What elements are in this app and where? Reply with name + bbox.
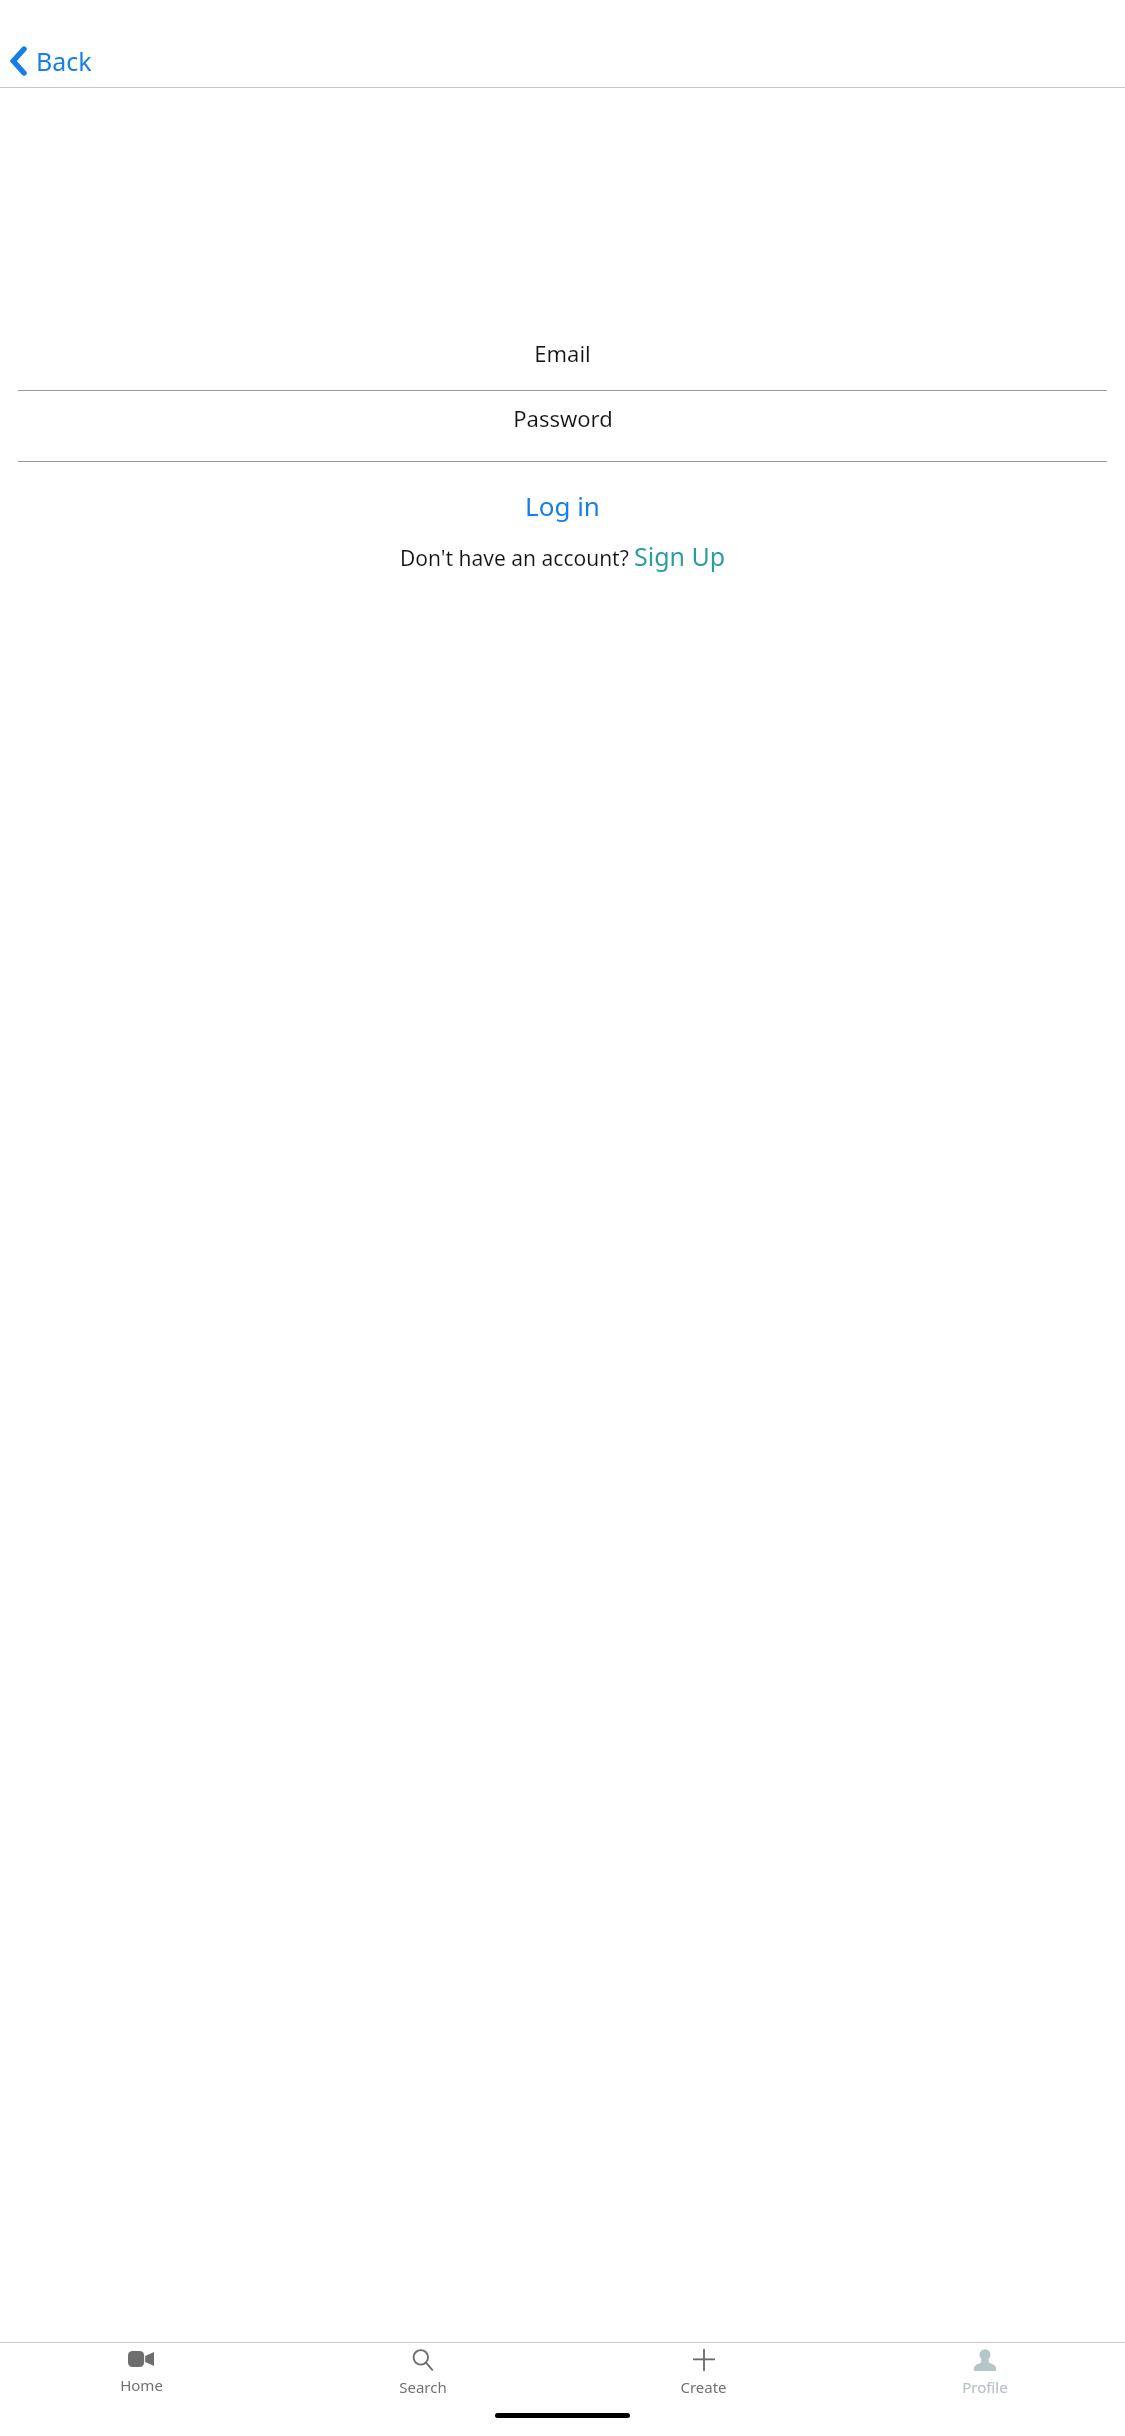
button[interactable]: Sign Up [634, 539, 726, 573]
staticText: Password [513, 403, 613, 433]
staticText: Email [534, 338, 591, 368]
staticText: Sign Up [634, 539, 726, 573]
staticText: Home [120, 2375, 163, 2395]
staticText: Profile [962, 2377, 1008, 2397]
staticText: Don't have an account? [400, 544, 629, 573]
other: Profile [973, 2349, 997, 2371]
button[interactable]: Log in [511, 484, 614, 527]
button[interactable]: Home [0, 2343, 282, 2405]
other: Search [412, 2349, 434, 2371]
staticText: Log in [525, 488, 600, 523]
button[interactable]: Back [6, 40, 96, 82]
button[interactable]: Profile [844, 2343, 1125, 2405]
button[interactable]: Password [0, 391, 1125, 461]
staticText: Create [680, 2377, 727, 2397]
button[interactable]: Email [0, 338, 1125, 390]
other: Create [693, 2349, 715, 2371]
staticText: Search [399, 2377, 447, 2397]
button[interactable]: Search [282, 2343, 563, 2405]
button[interactable]: Create [563, 2343, 844, 2405]
other: Home [128, 2349, 154, 2369]
staticText: Back [36, 44, 92, 78]
